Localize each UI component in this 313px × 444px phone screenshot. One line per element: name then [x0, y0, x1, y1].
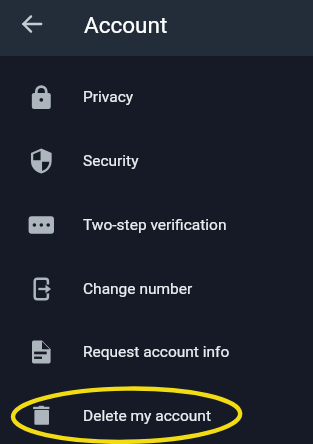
- button[interactable]: Two-step verification: [0, 193, 313, 257]
- button[interactable]: Delete my account: [0, 384, 313, 444]
- button[interactable]: Security: [0, 129, 313, 193]
- staticText: Change number: [83, 280, 193, 298]
- staticText: Two-step verification: [83, 216, 227, 234]
- button[interactable]: Privacy: [0, 65, 313, 129]
- staticText: Delete my account: [83, 407, 211, 425]
- button[interactable]: Change number: [0, 257, 313, 321]
- staticText: Privacy: [83, 88, 134, 106]
- staticText: Request account info: [83, 343, 230, 361]
- button[interactable]: Request account info: [0, 320, 313, 384]
- staticText: Security: [83, 152, 139, 170]
- button[interactable]: Back: [10, 2, 54, 46]
- staticText: Account: [84, 12, 168, 38]
